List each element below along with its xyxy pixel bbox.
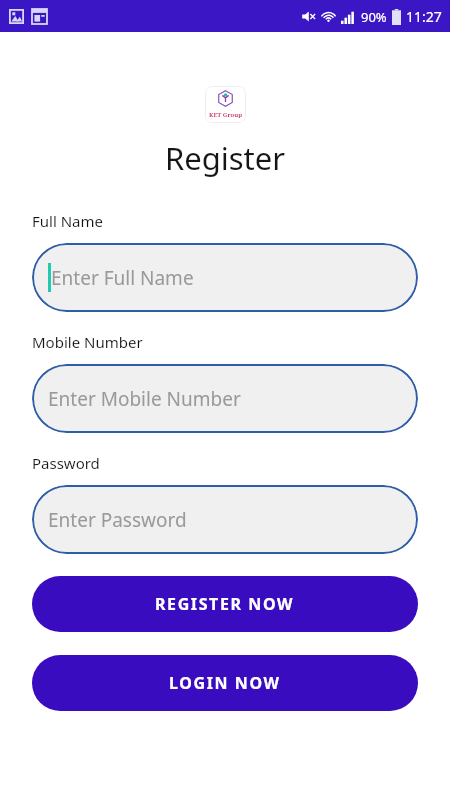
staticText: Register [0, 137, 450, 179]
button[interactable]: Enter Password [32, 485, 418, 554]
staticText: Enter Full Name [51, 265, 194, 291]
staticText: 90% [361, 8, 387, 26]
button[interactable]: Enter Mobile Number [32, 364, 418, 433]
staticText: Full Name [32, 211, 103, 231]
staticText: 11:27 [406, 7, 442, 26]
button[interactable]: LOGIN NOW [32, 655, 418, 711]
button[interactable]: Enter Full Name [32, 243, 418, 312]
staticText: REGISTER NOW [155, 593, 295, 615]
staticText: Password [32, 453, 100, 473]
staticText: LOGIN NOW [169, 672, 281, 694]
staticText: Enter Password [48, 507, 187, 533]
staticText: KET Group [209, 111, 243, 119]
staticText: Enter Mobile Number [48, 386, 241, 412]
staticText: Mobile Number [32, 332, 143, 352]
button[interactable]: REGISTER NOW [32, 576, 418, 632]
